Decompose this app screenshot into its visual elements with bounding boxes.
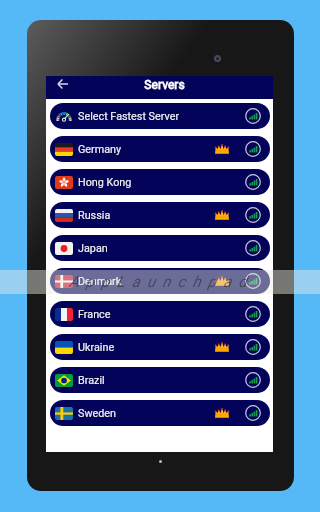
button[interactable]: Germany [50,136,270,162]
button[interactable]: Hong Kong [50,169,270,195]
button[interactable]: Select Fastest Server [50,103,270,129]
button[interactable]: Back [51,72,75,95]
staticText: Servers [144,78,185,92]
staticText: Select Fastest Server [78,110,180,123]
button[interactable]: Denmark [50,268,270,294]
staticText: Hong Kong [78,176,132,189]
staticText: AppLaunchpad [69,273,254,291]
staticText: France [78,308,111,321]
staticText: Brazil [78,374,105,387]
button[interactable]: Sweden [50,400,270,426]
button[interactable]: Russia [50,202,270,228]
button[interactable]: France [50,301,270,327]
staticText: Russia [78,209,111,222]
staticText: Japan [78,242,108,255]
staticText: Germany [78,143,122,156]
staticText: Denmark [78,275,122,288]
button[interactable]: Japan [50,235,270,261]
staticText: Sweden [78,407,117,420]
button[interactable]: Brazil [50,367,270,393]
button[interactable]: Ukraine [50,334,270,360]
staticText: Ukraine [78,341,115,354]
